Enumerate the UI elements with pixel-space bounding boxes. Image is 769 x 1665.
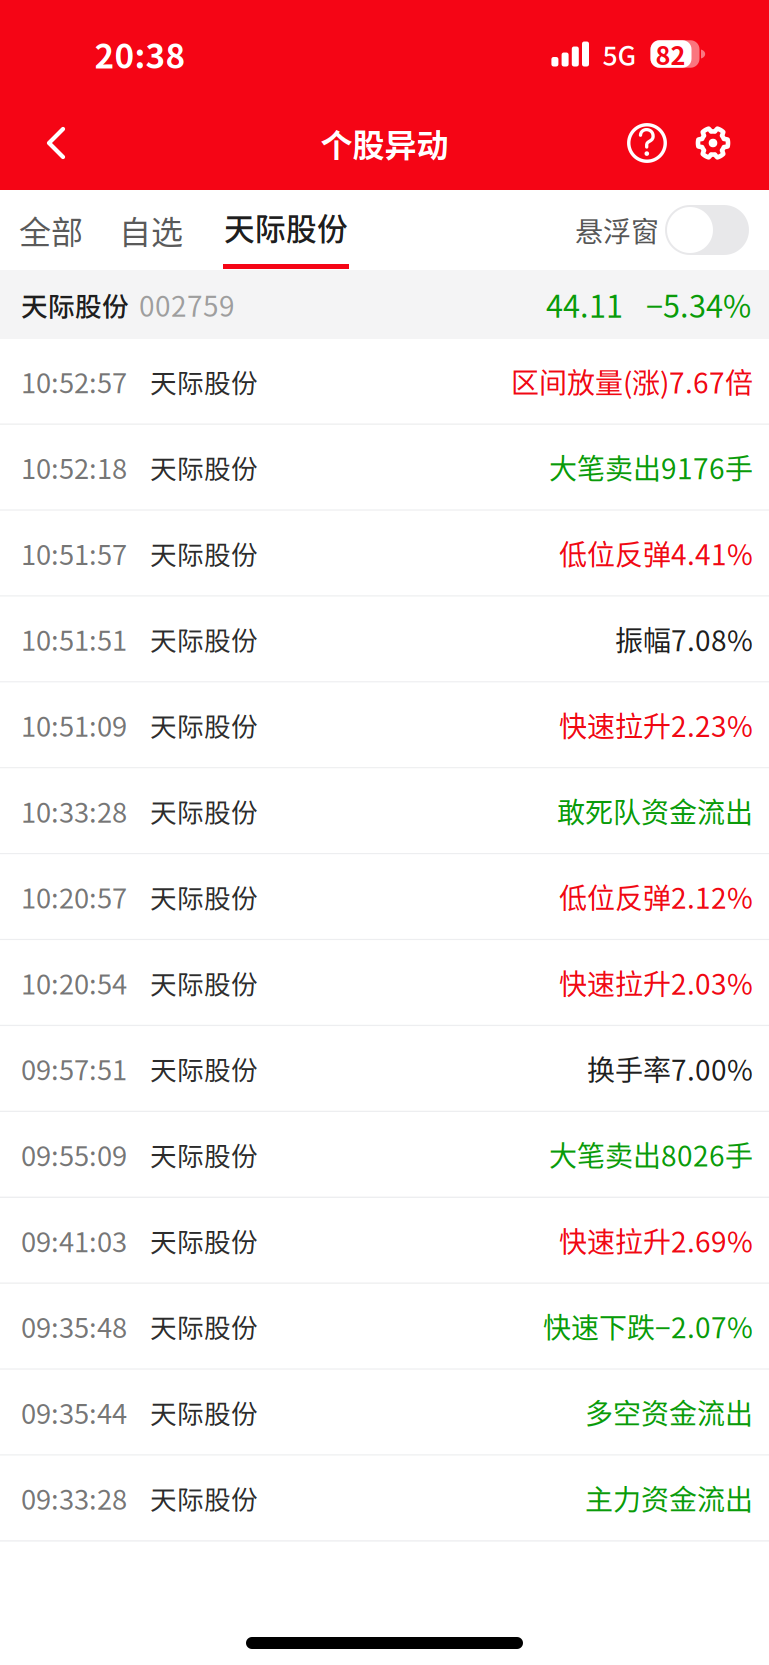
button[interactable]: 10:51:57 [0, 511, 769, 597]
staticText: 个股异动 [320, 120, 448, 166]
staticText: 10:20:57 [21, 877, 127, 916]
staticText: 快速下跌−2.07% [543, 1306, 753, 1346]
staticText: 自选 [119, 207, 183, 253]
button[interactable]: 10:20:54 [0, 940, 769, 1026]
button[interactable]: 全部 [0, 190, 97, 270]
staticText: 天际股份 [150, 705, 258, 744]
staticText: 快速拉升2.69% [559, 1220, 753, 1260]
button[interactable]: 10:52:57 [0, 339, 769, 425]
staticText: 002759 [139, 284, 235, 325]
staticText: 09:41:03 [21, 1220, 127, 1260]
staticText: 10:52:18 [21, 447, 127, 487]
staticText: 44.11 [546, 282, 623, 327]
staticText: 09:57:51 [21, 1049, 127, 1088]
staticText: 82 [655, 36, 685, 72]
staticText: 天际股份 [150, 1135, 258, 1174]
button[interactable]: 09:57:51 [0, 1026, 769, 1112]
staticText: 天际股份 [150, 1221, 258, 1259]
staticText: 10:51:09 [21, 705, 127, 745]
button[interactable]: 09:35:48 [0, 1284, 769, 1370]
staticText: 低位反弹2.12% [559, 876, 753, 917]
button[interactable]: Back [24, 111, 88, 175]
button[interactable]: 自选 [97, 190, 204, 270]
staticText: 快速拉升2.03% [559, 962, 753, 1003]
staticText: 区间放量(涨)7.67倍 [511, 361, 753, 401]
staticText: 大笔卖出8026手 [549, 1134, 753, 1175]
staticText: 天际股份 [150, 963, 258, 1002]
staticText: 天际股份 [150, 534, 258, 572]
button[interactable]: 09:33:28 [0, 1456, 769, 1542]
button[interactable]: Help [620, 112, 674, 174]
staticText: −5.34% [646, 282, 751, 327]
staticText: 10:20:54 [21, 963, 127, 1002]
button[interactable]: Settings [686, 112, 740, 174]
button[interactable]: 10:51:09 [0, 683, 769, 768]
button[interactable]: 09:35:44 [0, 1370, 769, 1456]
staticText: 09:33:28 [21, 1478, 127, 1518]
staticText: 快速拉升2.23% [559, 705, 753, 745]
staticText: 天际股份 [150, 791, 258, 830]
staticText: 09:35:48 [21, 1306, 127, 1346]
staticText: 10:52:57 [21, 361, 127, 401]
button[interactable]: 天际股份 [204, 190, 368, 270]
staticText: 天际股份 [150, 877, 258, 916]
staticText: 天际股份 [150, 1307, 258, 1345]
staticText: 09:35:44 [21, 1392, 127, 1432]
staticText: 10:33:28 [21, 791, 127, 831]
button[interactable]: 09:55:09 [0, 1112, 769, 1198]
staticText: 20:38 [94, 30, 185, 78]
button[interactable]: 10:51:51 [0, 597, 769, 683]
staticText: 振幅7.08% [615, 619, 753, 659]
button[interactable]: 10:20:57 [0, 854, 769, 940]
staticText: 天际股份 [150, 448, 258, 486]
staticText: 天际股份 [224, 205, 348, 249]
staticText: 多空资金流出 [585, 1392, 753, 1432]
button[interactable]: 10:52:18 [0, 425, 769, 511]
staticText: 10:51:57 [21, 533, 127, 573]
staticText: 天际股份 [150, 362, 258, 400]
staticText: 天际股份 [150, 1049, 258, 1088]
staticText: 敢死队资金流出 [557, 790, 753, 831]
staticText: 5G [602, 35, 636, 73]
staticText: 大笔卖出9176手 [549, 447, 753, 487]
staticText: 09:55:09 [21, 1135, 127, 1174]
staticText: 主力资金流出 [585, 1478, 753, 1518]
button[interactable]: 09:41:03 [0, 1198, 769, 1284]
staticText: 天际股份 [150, 1479, 258, 1517]
staticText: 悬浮窗 [575, 210, 659, 250]
staticText: 低位反弹4.41% [559, 533, 753, 573]
staticText: 天际股份 [150, 1393, 258, 1431]
staticText: 10:51:51 [21, 619, 127, 659]
button[interactable]: Floating window [665, 205, 749, 255]
button[interactable]: 10:33:28 [0, 768, 769, 854]
staticText: 换手率7.00% [587, 1048, 753, 1089]
staticText: 天际股份 [150, 620, 258, 658]
staticText: 天际股份 [21, 285, 129, 324]
staticText: 全部 [19, 207, 83, 253]
